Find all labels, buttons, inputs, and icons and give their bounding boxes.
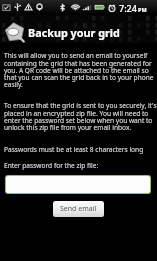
button[interactable]: Password input xyxy=(5,175,151,194)
staticText: Backup your grid xyxy=(28,25,120,40)
staticText: Send email xyxy=(60,204,97,214)
staticText: Enter password for the zip file: xyxy=(4,161,99,170)
staticText: 7:24 xyxy=(119,2,137,14)
staticText: PM xyxy=(138,6,147,13)
staticText: To ensure that the grid is sent to you s… xyxy=(4,101,157,132)
staticText: This will allow you to send an email to … xyxy=(4,51,157,89)
button[interactable]: Send email xyxy=(53,201,104,217)
staticText: Passwords must be at least 8 characters … xyxy=(4,145,144,154)
